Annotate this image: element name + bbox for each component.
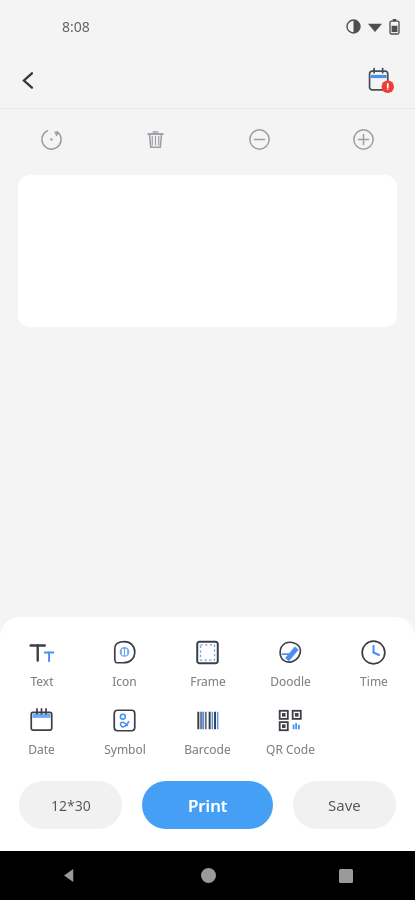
staticText: Barcode (184, 741, 231, 757)
button[interactable]: Print (142, 781, 273, 829)
staticText: Text (30, 673, 54, 689)
button[interactable]: 12*30 (19, 781, 122, 829)
staticText: Save (328, 795, 361, 815)
button[interactable]: Back (0, 851, 139, 900)
button[interactable]: Zoom in (311, 109, 415, 169)
staticText: Date (28, 741, 55, 757)
button[interactable]: Frame (166, 637, 249, 691)
staticText: Symbol (104, 741, 146, 757)
button[interactable]: Icon (83, 637, 166, 691)
staticText: 12*30 (51, 796, 91, 815)
staticText: 8:08 (62, 17, 90, 36)
staticText: Doodle (270, 673, 311, 689)
button[interactable]: Time (332, 637, 415, 691)
button[interactable]: Save (293, 781, 396, 829)
button[interactable]: Home (139, 851, 277, 900)
staticText: Print (188, 794, 228, 817)
button[interactable]: Rotate (0, 109, 103, 169)
staticText: Time (360, 673, 388, 689)
button[interactable]: Symbol (83, 705, 166, 759)
button[interactable]: Recents (277, 851, 415, 900)
button[interactable]: QR Code (249, 705, 332, 759)
button[interactable]: Date (0, 705, 83, 759)
button[interactable]: Zoom out (207, 109, 311, 169)
button[interactable]: Back (6, 58, 50, 102)
staticText: QR Code (266, 741, 315, 757)
button[interactable]: Barcode (166, 705, 249, 759)
button[interactable]: Calendar alert (359, 58, 403, 102)
staticText: Icon (112, 673, 137, 689)
button[interactable]: Text (0, 637, 83, 691)
button[interactable]: Delete (103, 109, 207, 169)
staticText: Frame (190, 673, 226, 689)
button[interactable]: Doodle (249, 637, 332, 691)
